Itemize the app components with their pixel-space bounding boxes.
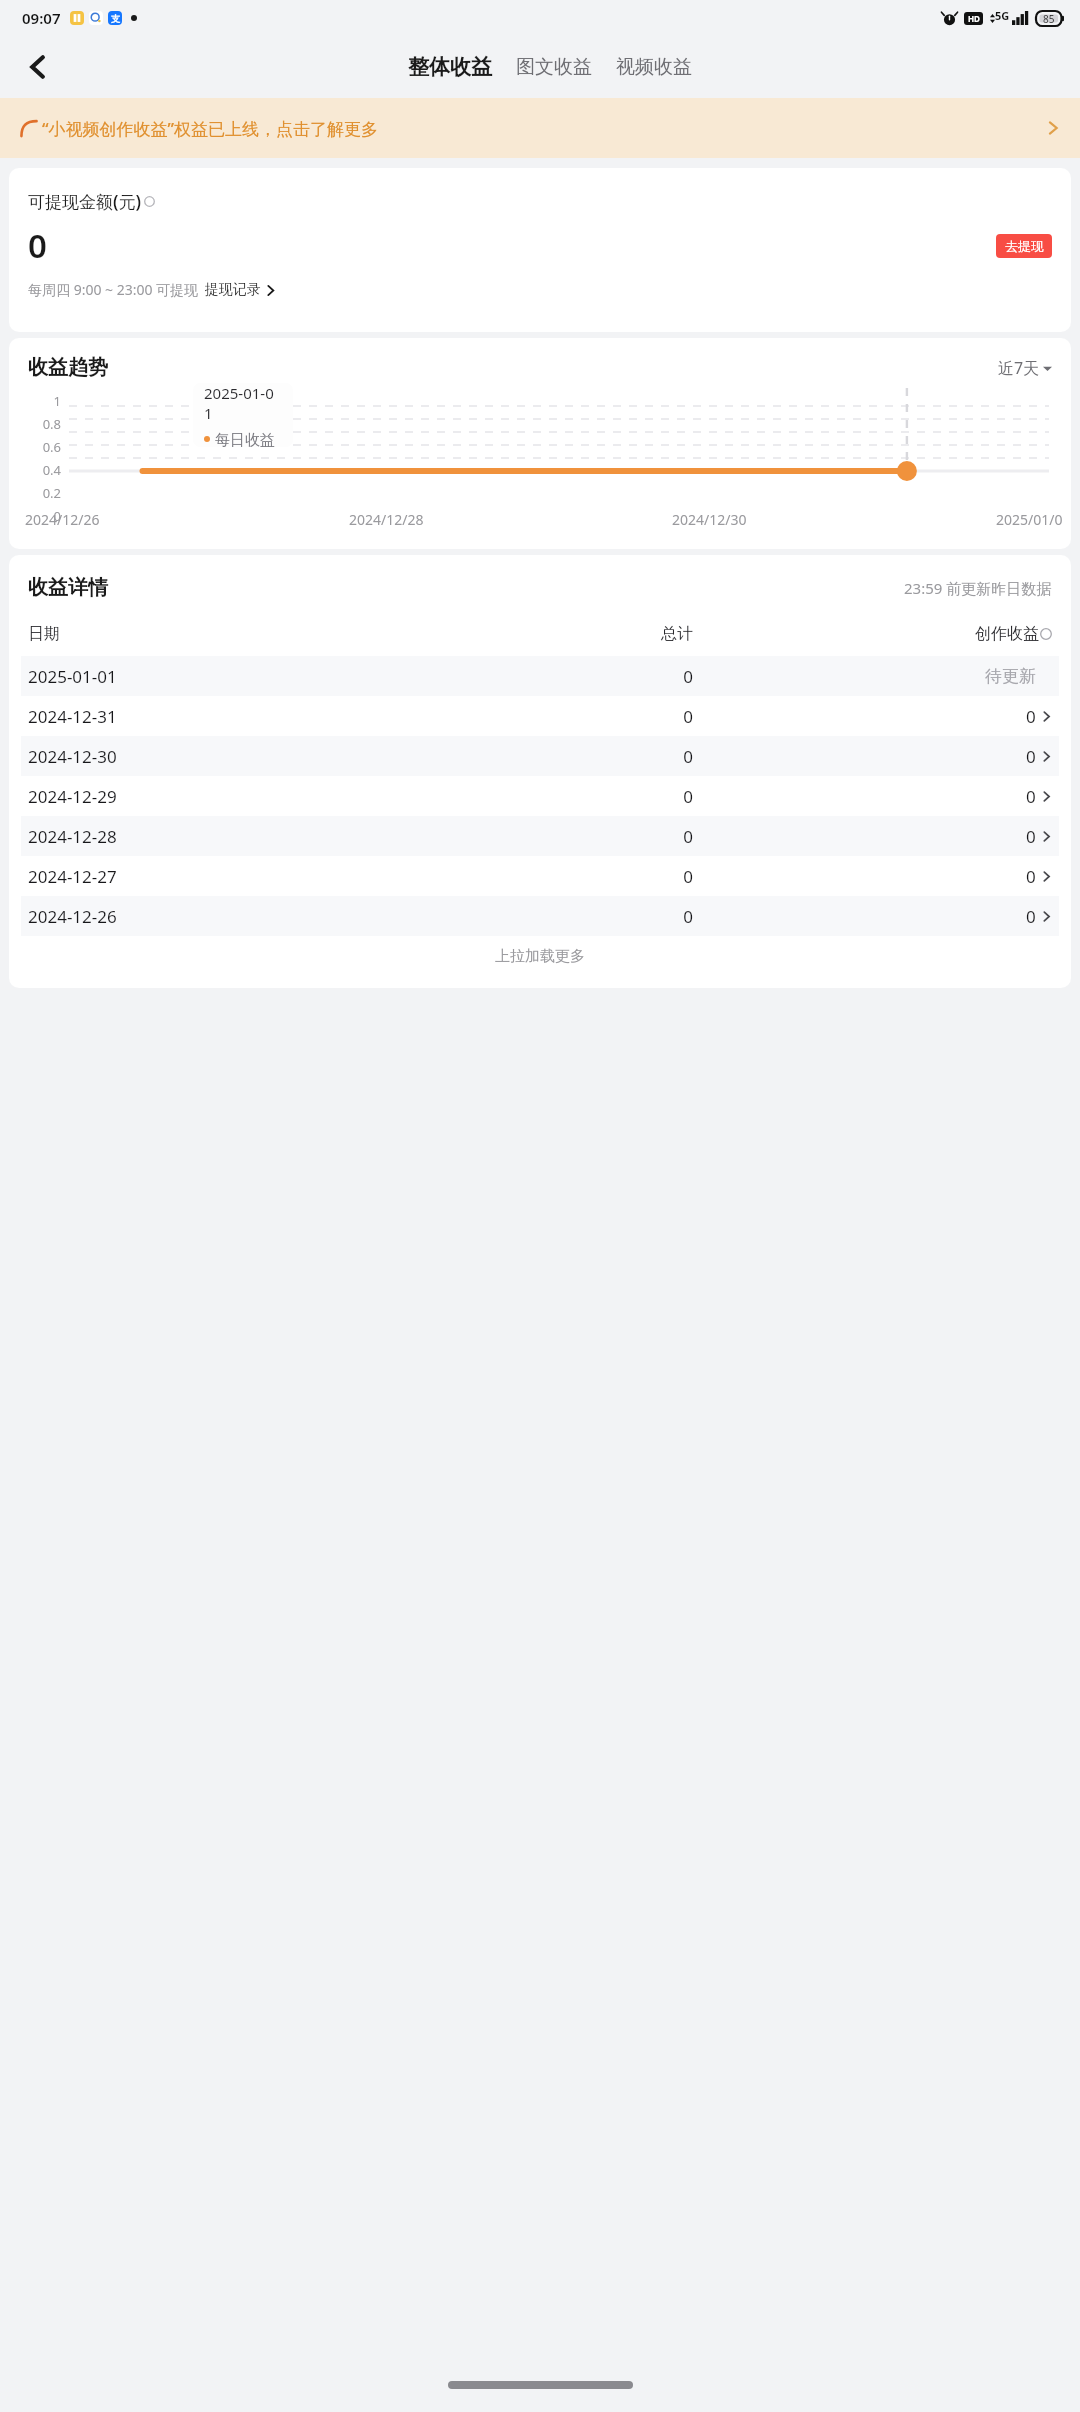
button[interactable]: 2024-12-30	[21, 736, 1059, 776]
button[interactable]: 2024-12-27	[21, 856, 1059, 896]
staticText: 收益详情	[28, 575, 108, 600]
staticText: 2024-12-30	[28, 745, 388, 768]
staticText: 0	[1026, 825, 1036, 848]
staticText: 0	[1026, 745, 1036, 768]
staticText: 创作收益	[975, 624, 1039, 644]
staticText: 总计	[388, 624, 693, 644]
staticText: 23:59 前更新昨日数据	[904, 578, 1052, 598]
staticText: 每周四 9:00 ~ 23:00 可提现	[28, 280, 199, 299]
button[interactable]: 2024-12-31	[21, 696, 1059, 736]
staticText: 0	[1026, 785, 1036, 808]
button[interactable]: 图文收益	[508, 49, 600, 85]
staticText: 0	[388, 825, 693, 848]
staticText: 2024/12/28	[349, 510, 424, 529]
staticText: 0.4	[19, 461, 61, 479]
staticText: 收益趋势	[28, 355, 108, 380]
staticText: 支	[111, 13, 120, 24]
staticText: 0	[1026, 705, 1036, 728]
staticText: 图文收益	[516, 55, 592, 79]
button[interactable]: 去提现	[996, 234, 1052, 258]
staticText: 0.8	[19, 415, 61, 433]
staticText: 待更新	[985, 666, 1036, 687]
staticText: 2024/12/30	[672, 510, 747, 529]
staticText: 0	[388, 705, 693, 728]
staticText: 2024-12-31	[28, 705, 388, 728]
staticText: HD	[968, 13, 980, 24]
staticText: 上拉加载更多	[495, 947, 585, 966]
button[interactable]: 提现记录	[205, 281, 276, 299]
staticText: 近7天	[998, 357, 1040, 379]
staticText: 0	[388, 785, 693, 808]
button[interactable]: 视频收益	[608, 49, 700, 85]
staticText: 去提现	[1005, 238, 1044, 254]
button[interactable]: 整体收益	[400, 48, 500, 86]
staticText: 0	[388, 905, 693, 928]
staticText: 5G	[995, 8, 1010, 23]
staticText: 2025/01/0	[996, 510, 1063, 529]
staticText: 2025-01-01	[204, 383, 282, 423]
button[interactable]: 近7天	[998, 357, 1052, 379]
staticText: 2024-12-27	[28, 865, 388, 888]
staticText: 提现记录	[205, 281, 261, 299]
staticText: 0	[19, 507, 61, 525]
staticText: 0.2	[19, 484, 61, 502]
button[interactable]: 2024-12-29	[21, 776, 1059, 816]
staticText: 日期	[28, 624, 388, 644]
staticText: 每日收益	[215, 431, 275, 447]
button[interactable]: 2024-12-28	[21, 816, 1059, 856]
staticText: 0	[388, 865, 693, 888]
staticText: 85	[1043, 12, 1055, 26]
staticText: 1	[19, 392, 61, 410]
button[interactable]: 2025-01-01	[21, 656, 1059, 696]
staticText: “小视频创作收益”权益已上线，点击了解更多	[42, 117, 379, 140]
staticText: 09:07	[22, 8, 61, 28]
staticText: 2024-12-29	[28, 785, 388, 808]
button[interactable]: “小视频创作收益”权益已上线，点击了解更多	[0, 98, 1080, 158]
staticText: 0	[1026, 905, 1036, 928]
staticText: 0	[1026, 865, 1036, 888]
staticText: 可提现金额(元)	[28, 190, 142, 213]
staticText: 0	[388, 665, 693, 688]
staticText: 整体收益	[408, 54, 492, 80]
staticText: 0	[388, 745, 693, 768]
staticText: 2024-12-26	[28, 905, 388, 928]
button[interactable]: Back	[12, 41, 64, 93]
staticText: 视频收益	[616, 55, 692, 79]
staticText: 0.6	[19, 438, 61, 456]
staticText: 2024-12-28	[28, 825, 388, 848]
staticText: 2025-01-01	[28, 665, 388, 688]
staticText: 2024/12/26	[25, 510, 100, 529]
staticText: 0	[28, 223, 47, 268]
button[interactable]: 2024-12-26	[21, 896, 1059, 936]
